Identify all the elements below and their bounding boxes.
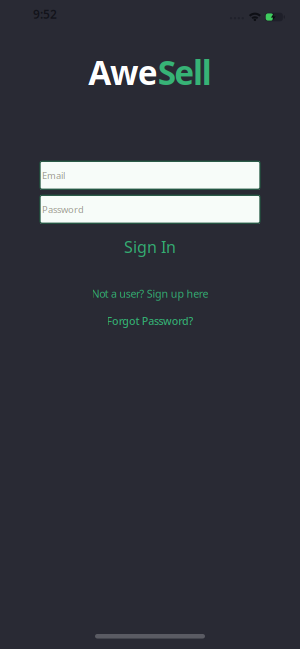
staticText: Password	[42, 203, 84, 215]
staticText: Awe	[88, 50, 158, 94]
textField[interactable]: Email	[42, 169, 260, 181]
button[interactable]: Forgot Password?	[106, 314, 193, 328]
staticText: Sell	[158, 50, 212, 94]
secureTextField[interactable]: Password	[42, 203, 260, 215]
button[interactable]: Sign In	[124, 236, 176, 257]
button[interactable]: Not a user? Sign up here	[92, 286, 208, 301]
staticText: Forgot Password?	[106, 314, 193, 328]
staticText: Not a user? Sign up here	[92, 286, 208, 301]
staticText: 9:52	[33, 6, 57, 22]
staticText: Email	[42, 169, 65, 181]
staticText: Sign In	[124, 236, 176, 257]
